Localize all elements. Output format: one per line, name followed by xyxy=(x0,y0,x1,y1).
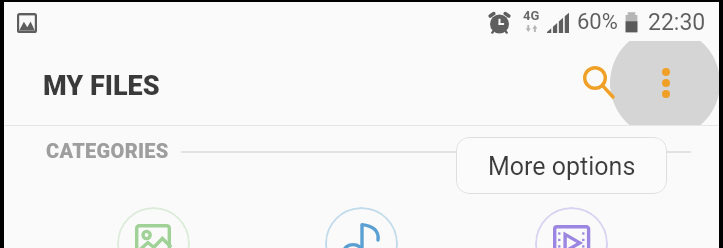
staticText: More options xyxy=(488,152,636,181)
button[interactable]: Videos xyxy=(535,207,608,248)
button[interactable]: Search xyxy=(564,41,634,125)
staticText: MY FILES xyxy=(43,70,160,102)
button[interactable]: Images xyxy=(117,207,190,248)
staticText: 22:30 xyxy=(648,9,706,36)
button[interactable]: Audio xyxy=(325,207,398,248)
staticText: 60% xyxy=(577,9,618,35)
button[interactable]: More options xyxy=(631,41,701,125)
staticText: CATEGORIES xyxy=(46,139,169,162)
staticText: 4G xyxy=(523,8,540,23)
